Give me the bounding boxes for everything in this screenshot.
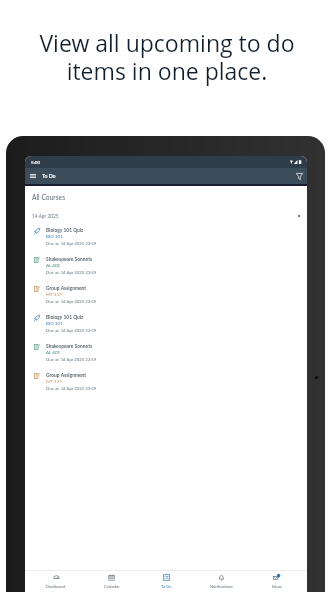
staticText: Notifications [210,584,233,589]
staticText: Group Assignment [46,285,87,291]
button[interactable]: Open navigation menu [27,170,39,182]
button[interactable]: Calendar [84,571,139,592]
staticText: Due at: 14 Apr 2025 23:59 [46,299,97,304]
button[interactable]: Inbox [249,571,304,592]
button[interactable]: Dashboard [28,571,84,592]
button[interactable]: Group Assignment [25,365,307,394]
button[interactable]: Biology 101 Quiz [25,307,307,336]
staticText: Inbox [272,584,282,589]
staticText: AL 401 [46,350,61,355]
staticText: MT 337 [46,292,62,297]
button[interactable]: Shakespeare Sonnets [25,336,307,365]
staticText: Biology 101 Quiz [46,314,84,320]
staticText: Due at: 14 Apr 2025 23:59 [46,328,97,333]
staticText: AL 401 [46,263,61,268]
staticText: All Courses [32,193,66,201]
staticText: Calendar [104,584,120,589]
staticText: Biology 101 Quiz [46,227,84,233]
staticText: BIO 101 [46,234,63,239]
staticText: Shakespeare Sonnets [46,343,93,349]
staticText: Due at: 14 Apr 2025 23:59 [46,357,97,362]
staticText: MT 337 [46,379,62,384]
button[interactable]: Shakespeare Sonnets [25,249,307,278]
button[interactable]: To Do [139,571,194,592]
staticText: Dashboard [46,584,66,589]
staticText: To Do [42,173,56,179]
staticText: View all upcoming to do items in one pla… [39,27,295,87]
button[interactable]: Filter [293,170,305,182]
staticText: Due at: 14 Apr 2025 23:59 [46,270,97,275]
staticText: Due at: 14 Apr 2025 23:59 [46,241,97,246]
staticText: Group Assignment [46,372,87,378]
button[interactable]: Biology 101 Quiz [25,220,307,249]
button[interactable]: Notifications [194,571,249,592]
staticText: Shakespeare Sonnets [46,256,93,262]
staticText: Due at: 14 Apr 2025 23:59 [46,386,97,391]
staticText: BIO 101 [46,321,63,326]
staticText: 5:00 [31,159,41,165]
staticText: 14 Apr 2025 [32,213,59,219]
button[interactable]: Group Assignment [25,278,307,307]
staticText: To Do [161,584,172,589]
